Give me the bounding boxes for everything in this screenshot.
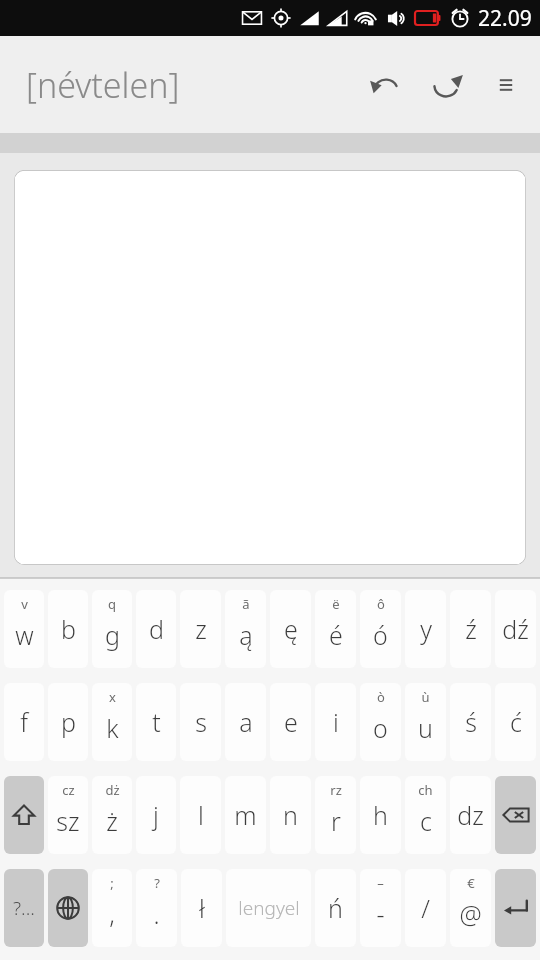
- button[interactable]: b: [48, 590, 88, 668]
- staticText: ë: [332, 595, 340, 613]
- button[interactable]: t: [136, 683, 176, 761]
- staticText: n: [283, 798, 298, 832]
- button[interactable]: c: [405, 776, 446, 854]
- button[interactable]: h: [360, 776, 401, 854]
- staticText: y: [420, 612, 432, 646]
- staticText: lengyel: [238, 895, 300, 921]
- button[interactable]: ż: [92, 776, 132, 854]
- staticText: rz: [330, 781, 342, 799]
- button[interactable]: l: [180, 776, 221, 854]
- button[interactable]: e: [270, 683, 311, 761]
- staticText: dź: [502, 612, 529, 646]
- button[interactable]: o: [360, 683, 401, 761]
- button[interactable]: é: [315, 590, 356, 668]
- button[interactable]: n: [270, 776, 311, 854]
- staticText: w: [15, 618, 34, 652]
- button[interactable]: Undo: [354, 54, 416, 116]
- staticText: a: [239, 705, 253, 739]
- staticText: -: [376, 897, 385, 931]
- staticText: ź: [465, 612, 477, 646]
- button[interactable]: j: [136, 776, 176, 854]
- staticText: p: [61, 705, 76, 739]
- button[interactable]: ń: [315, 869, 356, 947]
- staticText: –: [377, 874, 384, 892]
- staticText: cz: [62, 781, 75, 799]
- staticText: z: [195, 612, 207, 646]
- staticText: h: [373, 798, 388, 832]
- staticText: €: [467, 874, 475, 892]
- staticText: ę: [284, 612, 298, 646]
- button[interactable]: z: [180, 590, 221, 668]
- button[interactable]: ś: [450, 683, 491, 761]
- staticText: s: [195, 705, 207, 739]
- staticText: t: [152, 705, 161, 739]
- button[interactable]: Redo: [416, 54, 478, 116]
- staticText: r: [331, 804, 341, 838]
- staticText: e: [284, 705, 298, 739]
- staticText: k: [106, 711, 119, 745]
- staticText: ł: [199, 891, 205, 925]
- button[interactable]: g: [92, 590, 132, 668]
- button[interactable]: @: [450, 869, 491, 947]
- button[interactable]: d: [136, 590, 176, 668]
- staticText: d: [149, 612, 164, 646]
- button[interactable]: Menu: [478, 57, 534, 113]
- staticText: l: [198, 798, 204, 832]
- staticText: ch: [418, 781, 433, 799]
- button[interactable]: /: [405, 869, 446, 947]
- staticText: ã: [242, 595, 250, 613]
- button[interactable]: f: [4, 683, 44, 761]
- button[interactable]: y: [405, 590, 446, 668]
- staticText: ą: [239, 618, 253, 652]
- button[interactable]: lengyel: [226, 869, 311, 947]
- button[interactable]: s: [180, 683, 221, 761]
- staticText: v: [21, 595, 28, 613]
- button[interactable]: w: [4, 590, 44, 668]
- staticText: @: [459, 897, 482, 931]
- button[interactable]: sz: [48, 776, 88, 854]
- button[interactable]: ł: [181, 869, 222, 947]
- staticText: ó: [373, 618, 388, 652]
- button[interactable]: ę: [270, 590, 311, 668]
- button[interactable]: ź: [450, 590, 491, 668]
- button[interactable]: ó: [360, 590, 401, 668]
- button[interactable]: -: [360, 869, 401, 947]
- staticText: ?: [154, 874, 160, 892]
- button[interactable]: p: [48, 683, 88, 761]
- button[interactable]: ą: [225, 590, 266, 668]
- button[interactable]: ć: [495, 683, 536, 761]
- button[interactable]: ?...: [4, 869, 44, 947]
- button[interactable]: dz: [450, 776, 491, 854]
- button[interactable]: [14, 170, 526, 565]
- button[interactable]: m: [225, 776, 266, 854]
- button[interactable]: a: [225, 683, 266, 761]
- button[interactable]: Backspace: [495, 776, 536, 854]
- button[interactable]: r: [315, 776, 356, 854]
- button[interactable]: ,: [92, 869, 132, 947]
- staticText: ò: [377, 688, 385, 706]
- staticText: o: [373, 711, 388, 745]
- staticText: .: [153, 897, 160, 931]
- staticText: g: [105, 618, 120, 652]
- staticText: [névtelen]: [26, 62, 180, 108]
- staticText: ,: [109, 897, 115, 931]
- staticText: u: [418, 711, 433, 745]
- button[interactable]: i: [315, 683, 356, 761]
- button[interactable]: k: [92, 683, 132, 761]
- staticText: é: [329, 618, 343, 652]
- staticText: ś: [465, 705, 477, 739]
- staticText: ô: [377, 595, 385, 613]
- staticText: x: [109, 688, 116, 706]
- button[interactable]: .: [136, 869, 177, 947]
- staticText: dż: [105, 781, 120, 799]
- button[interactable]: Enter: [495, 869, 536, 947]
- staticText: dz: [457, 798, 484, 832]
- button[interactable]: u: [405, 683, 446, 761]
- staticText: 22.09: [478, 4, 532, 33]
- staticText: sz: [56, 804, 80, 838]
- button[interactable]: Change language: [48, 869, 88, 947]
- button[interactable]: dź: [495, 590, 536, 668]
- button[interactable]: Shift: [4, 776, 44, 854]
- staticText: ż: [106, 804, 118, 838]
- staticText: b: [61, 612, 76, 646]
